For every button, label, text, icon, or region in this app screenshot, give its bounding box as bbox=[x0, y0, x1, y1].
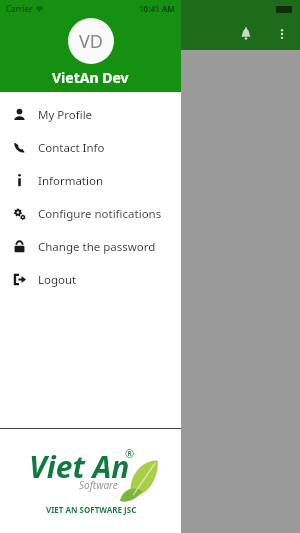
button[interactable]: Setting bbox=[66, 428, 100, 478]
staticText: Software bbox=[79, 478, 118, 492]
button[interactable]: Notifications bbox=[234, 22, 258, 46]
staticText: Setting bbox=[69, 428, 98, 439]
staticText: ® bbox=[125, 446, 135, 461]
staticText: Logout bbox=[38, 272, 77, 288]
staticText: ring System bbox=[8, 68, 85, 86]
staticText: VIET AN SOFTWARE JSC bbox=[46, 504, 137, 515]
staticText: Information bbox=[38, 173, 104, 189]
staticText: Carrier bbox=[6, 3, 33, 14]
staticText: My Profile bbox=[38, 107, 93, 123]
staticText: hong bbox=[8, 89, 36, 104]
staticText: Change the password bbox=[38, 239, 156, 255]
button[interactable]: More options bbox=[270, 22, 294, 46]
button[interactable]: Change the password bbox=[0, 230, 181, 263]
staticText: Contact Info bbox=[38, 140, 105, 156]
button[interactable]: My Profile bbox=[0, 98, 181, 131]
button[interactable]: Information bbox=[0, 164, 181, 197]
staticText: VD bbox=[79, 29, 103, 54]
staticText: Configure notifications bbox=[38, 206, 162, 222]
staticText: Viet An bbox=[29, 446, 130, 487]
button[interactable]: Configure notifications bbox=[0, 197, 181, 230]
staticText: VietAn Dev bbox=[52, 68, 129, 87]
staticText: 10:41 AM bbox=[139, 3, 175, 14]
button[interactable]: Contact Info bbox=[0, 131, 181, 164]
button[interactable]: Logout bbox=[0, 263, 181, 296]
